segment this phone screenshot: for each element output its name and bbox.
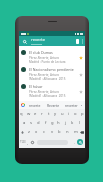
staticText: Madrid : Punto de Lectura — [29, 60, 66, 63]
staticText: c — [43, 129, 46, 135]
staticText: r — [41, 111, 43, 117]
button[interactable]: Favourite — [78, 89, 83, 94]
button[interactable]: q — [19, 110, 24, 118]
button[interactable]: reverter — [62, 101, 80, 109]
staticText: Pérez-Reverte, Arturo — [29, 90, 60, 94]
button[interactable]: v — [50, 128, 55, 136]
button[interactable]: ?123 — [20, 138, 26, 146]
staticText: h — [57, 120, 60, 126]
staticText: reverte — [29, 103, 41, 108]
staticText: g — [51, 120, 54, 126]
button[interactable]: w — [26, 110, 31, 118]
staticText: ?123 — [20, 140, 26, 144]
button[interactable]: o — [73, 110, 78, 118]
staticText: y — [54, 111, 57, 117]
button[interactable]: More suggestions — [80, 102, 83, 108]
button[interactable]: t — [46, 110, 51, 118]
button[interactable]: i — [66, 110, 71, 118]
staticText: v — [51, 129, 54, 135]
button[interactable]: reverte — [25, 101, 44, 109]
staticText: x — [35, 129, 38, 135]
staticText: reverte — [31, 37, 46, 43]
button[interactable]: El club Dumas — [19, 46, 85, 63]
staticText: El club Dumas — [29, 50, 53, 55]
button[interactable]: Search — [22, 39, 27, 44]
button[interactable]: z — [26, 128, 31, 136]
button[interactable]: s — [29, 119, 34, 127]
button[interactable]: a — [22, 119, 27, 127]
button[interactable]: Backspace — [79, 128, 84, 136]
button[interactable]: Reverte — [44, 101, 62, 109]
staticText: s — [30, 120, 33, 126]
button[interactable]: l — [77, 119, 82, 127]
button[interactable]: f — [43, 119, 48, 127]
button[interactable]: x — [34, 128, 39, 136]
staticText: El húsar — [29, 84, 43, 89]
button[interactable]: e — [33, 110, 38, 118]
button[interactable]: k — [70, 119, 75, 127]
staticText: Pérez-Reverte, Arturo — [29, 73, 60, 77]
button[interactable]: r — [39, 110, 44, 118]
staticText: m — [74, 129, 78, 135]
staticText: Reverte — [47, 103, 60, 108]
staticText: z — [28, 129, 30, 135]
staticText: j — [65, 120, 67, 126]
button[interactable]: h — [56, 119, 61, 127]
staticText: El Nacionalismo pendiente — [29, 67, 74, 72]
button[interactable]: d — [36, 119, 41, 127]
staticText: q — [20, 111, 23, 117]
button[interactable]: n — [65, 128, 70, 136]
staticText: e — [34, 111, 37, 117]
staticText: i — [68, 111, 70, 117]
button[interactable]: Search — [77, 139, 83, 145]
staticText: u — [61, 111, 64, 117]
button[interactable]: y — [53, 110, 58, 118]
staticText: l — [79, 120, 81, 126]
button[interactable]: m — [73, 128, 78, 136]
staticText: reverter — [65, 103, 78, 108]
staticText: t — [48, 111, 50, 117]
staticText: o — [74, 111, 77, 117]
staticText: f — [45, 120, 47, 126]
button[interactable]: . — [73, 138, 76, 146]
staticText: d — [37, 120, 40, 126]
staticText: a — [23, 120, 26, 126]
button[interactable]: Shift — [20, 128, 25, 136]
staticText: k — [71, 120, 74, 126]
button[interactable]: g — [50, 119, 55, 127]
staticText: , — [27, 140, 29, 145]
button[interactable]: Scan barcode — [76, 39, 79, 44]
staticText: n — [66, 129, 69, 135]
staticText: Pérez-Reverte, Arturo — [29, 56, 60, 60]
button[interactable]: Emoji — [30, 138, 35, 146]
button[interactable]: El húsar — [19, 80, 85, 97]
button[interactable]: Favourite — [78, 55, 83, 60]
button[interactable]: Google — [21, 103, 25, 107]
staticText: w — [27, 111, 31, 117]
button[interactable]: j — [63, 119, 68, 127]
button[interactable]: p — [80, 110, 85, 118]
button[interactable]: El Nacionalismo pendiente — [19, 63, 85, 80]
button[interactable]: Favourite — [78, 72, 83, 77]
staticText: p — [81, 111, 84, 117]
staticText: [Madrid] : Alfaguara, 2015 — [29, 94, 66, 97]
staticText: b — [58, 129, 61, 135]
staticText: [Madrid] : Alfaguara, 2015 — [29, 77, 66, 80]
button[interactable]: b — [57, 128, 62, 136]
button[interactable]: u — [60, 110, 65, 118]
staticText: . — [74, 140, 76, 145]
button[interactable]: , — [26, 138, 29, 146]
button[interactable]: c — [42, 128, 47, 136]
